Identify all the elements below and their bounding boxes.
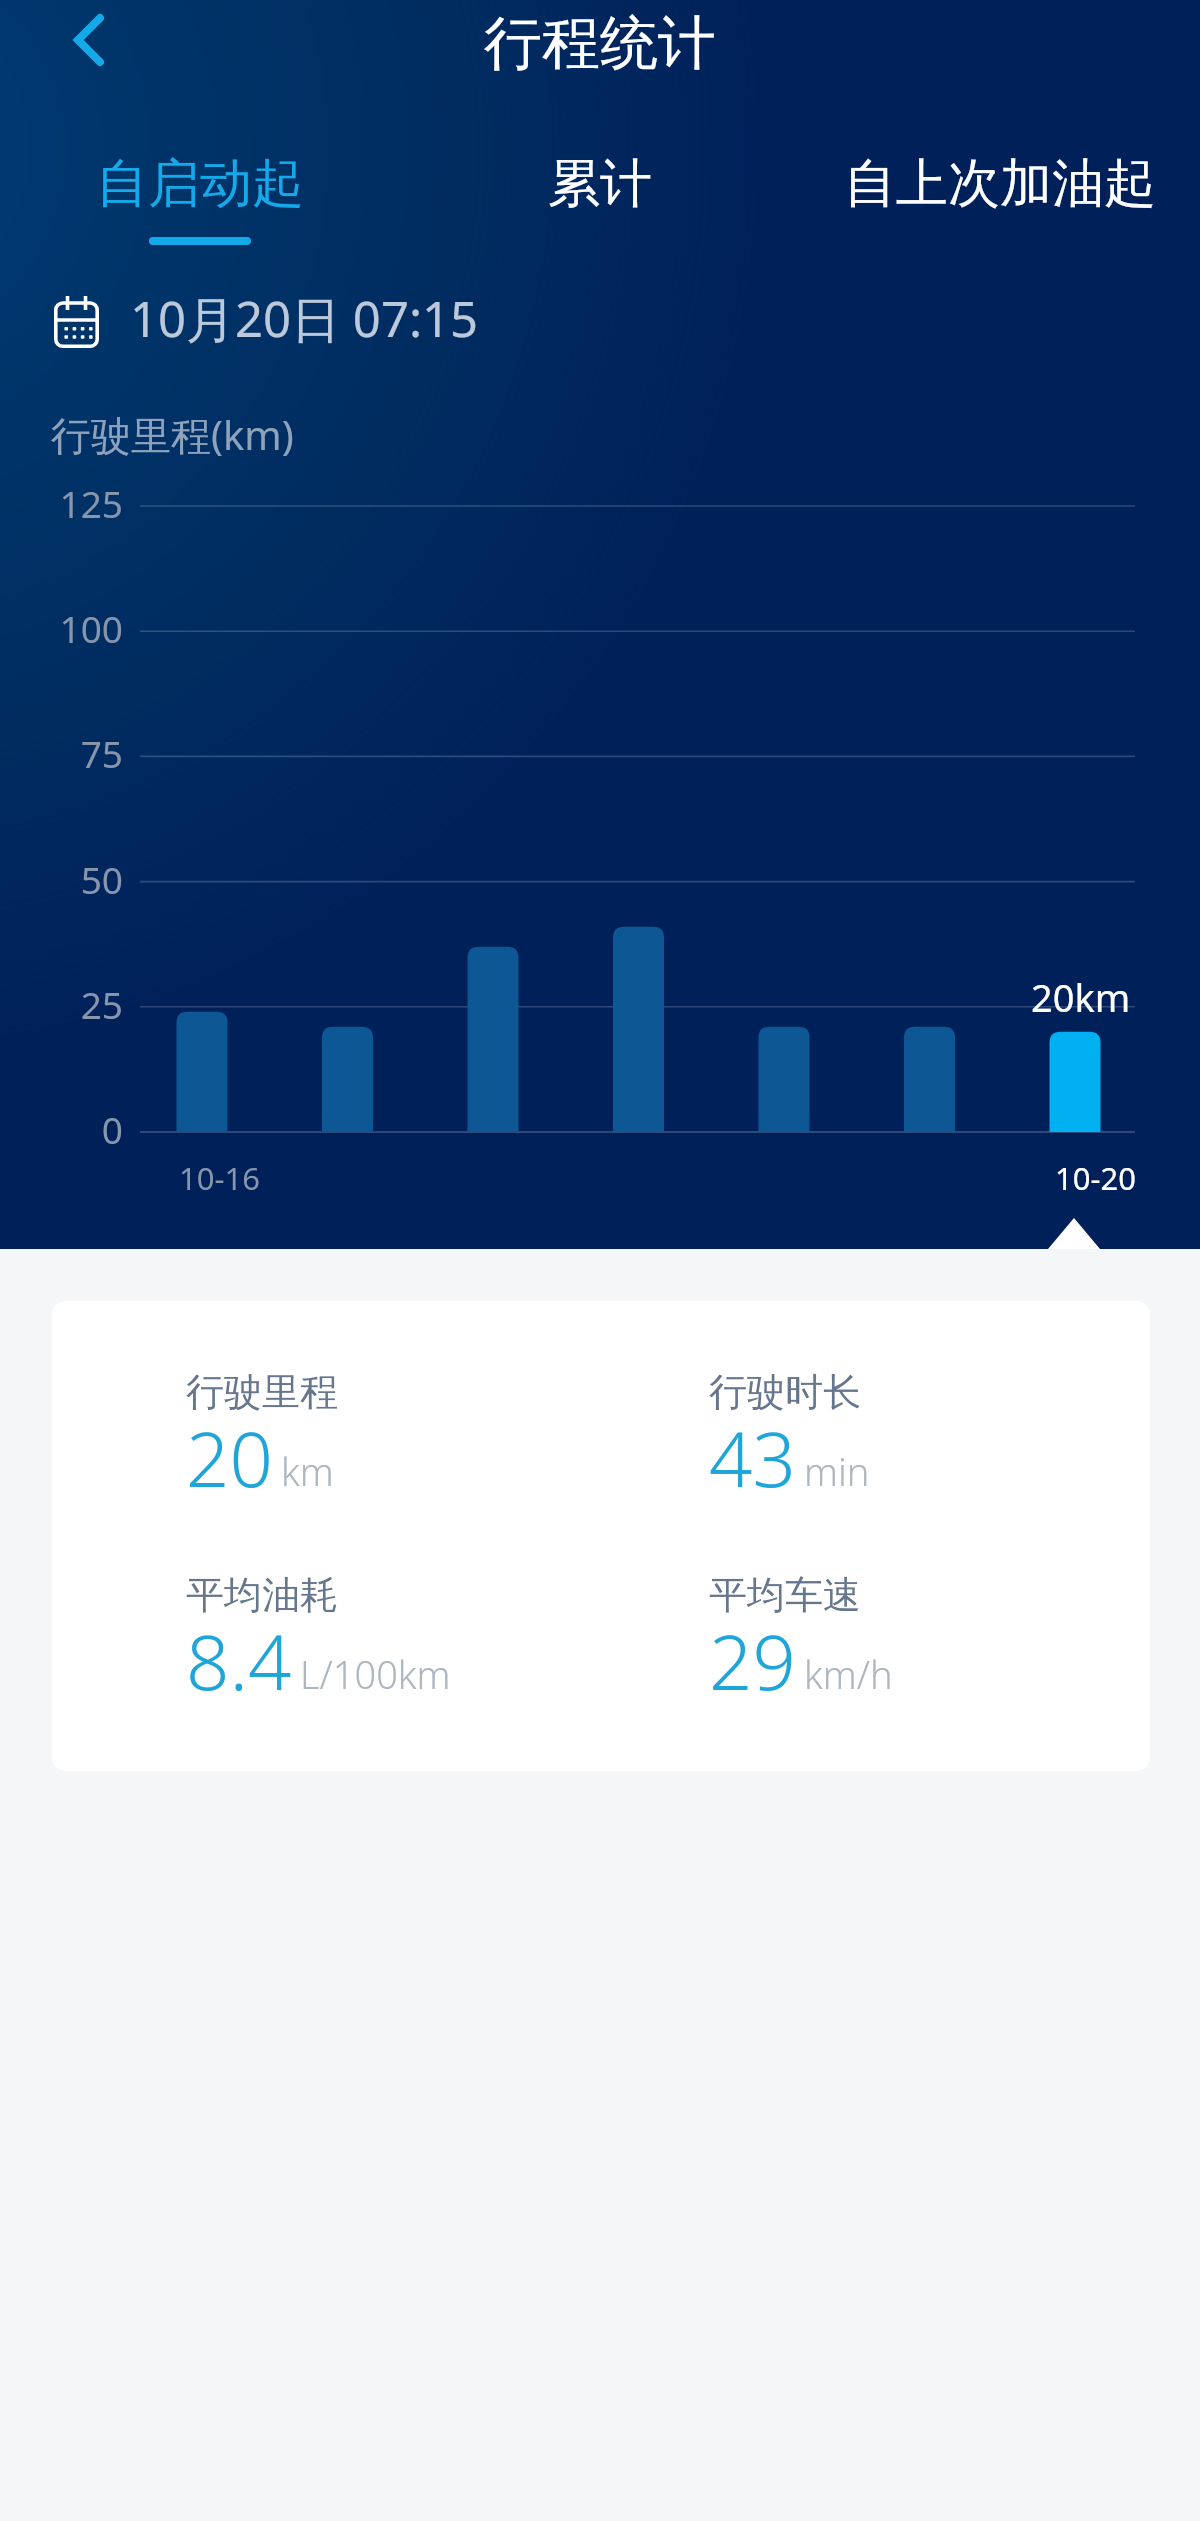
staticText: 75: [0, 728, 123, 778]
button[interactable]: Day column: [433, 520, 553, 1132]
staticText: 20km: [1031, 971, 1131, 1023]
button[interactable]: 行驶时长: [709, 1362, 1149, 1512]
button[interactable]: 平均车速: [709, 1565, 1149, 1715]
staticText: 10月20日 07:15: [130, 285, 479, 352]
staticText: 0: [0, 1104, 123, 1154]
staticText: 自上次加油起: [844, 151, 1156, 217]
staticText: min: [804, 1445, 870, 1497]
staticText: km: [281, 1445, 334, 1497]
staticText: 20: [186, 1406, 273, 1508]
button[interactable]: 行驶里程: [52, 1301, 1150, 1771]
button[interactable]: 平均油耗: [186, 1565, 626, 1715]
staticText: 125: [0, 478, 123, 528]
button[interactable]: 累计: [400, 148, 800, 252]
button[interactable]: Day column: [1015, 520, 1135, 1132]
staticText: 8.4: [186, 1609, 292, 1711]
button[interactable]: Day column: [724, 520, 844, 1132]
staticText: km/h: [804, 1648, 893, 1700]
button[interactable]: Day column: [579, 520, 699, 1132]
staticText: 行驶里程(km): [51, 407, 294, 462]
button[interactable]: 行驶里程: [186, 1362, 626, 1512]
staticText: 10-20: [1055, 1157, 1136, 1199]
button[interactable]: 自上次加油起: [800, 148, 1200, 252]
staticText: L/100km: [300, 1648, 451, 1700]
button[interactable]: 自启动起: [0, 148, 400, 252]
button[interactable]: Day column: [870, 520, 990, 1132]
staticText: 25: [0, 979, 123, 1029]
staticText: 平均油耗: [186, 1571, 338, 1619]
staticText: 43: [709, 1406, 796, 1508]
button[interactable]: Day column: [288, 520, 408, 1132]
button[interactable]: Day column: [142, 520, 262, 1132]
staticText: 行驶时长: [709, 1368, 861, 1416]
staticText: 29: [709, 1609, 796, 1711]
staticText: 平均车速: [709, 1571, 861, 1619]
staticText: 50: [0, 854, 123, 904]
staticText: 行程统计: [0, 7, 1200, 80]
staticText: 100: [0, 603, 123, 653]
staticText: 自启动起: [96, 151, 304, 217]
staticText: 累计: [548, 151, 652, 217]
button[interactable]: Back: [42, 0, 138, 82]
staticText: 行驶里程: [186, 1368, 338, 1416]
staticText: 10-16: [179, 1157, 260, 1199]
